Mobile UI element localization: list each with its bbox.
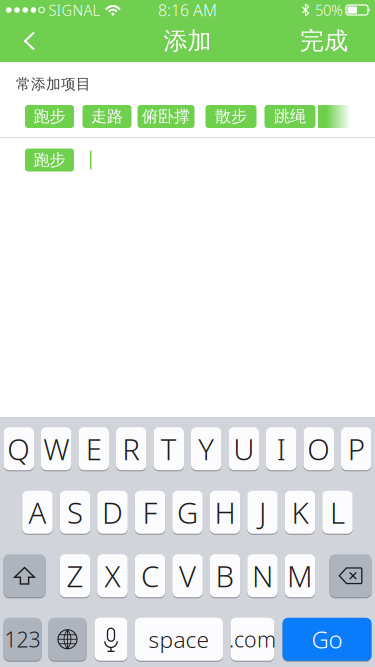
button[interactable]: 跑步 [25,148,74,171]
button[interactable]: 跑步 [25,105,74,128]
staticText: 俯卧撑 [142,107,190,126]
button[interactable]: D [97,490,128,534]
button[interactable]: Go [282,617,371,661]
staticText: R [122,429,140,468]
button[interactable]: L [322,490,353,534]
button[interactable]: K [285,490,315,534]
staticText: X [104,556,120,595]
staticText: T [161,429,177,468]
button[interactable]: B [210,554,240,598]
staticText: space [148,624,209,654]
staticText: D [102,493,123,532]
button[interactable]: space [135,617,223,661]
staticText: 跑步 [33,107,65,126]
button[interactable]: Z [60,554,90,598]
staticText: P [348,429,365,468]
button[interactable]: G [172,490,203,534]
staticText: .com [229,625,276,653]
staticText: 走路 [91,107,123,126]
button[interactable]: 跳绳 [264,105,315,128]
button[interactable]: 俯卧撑 [137,105,194,128]
staticText: M [287,556,313,595]
button[interactable]: X [97,554,128,598]
button[interactable]: U [228,427,259,471]
staticText: 跳绳 [274,107,306,126]
button[interactable]: E [78,427,109,471]
button[interactable]: O [303,427,334,471]
button[interactable]: Q [3,427,34,471]
staticText: S [67,493,83,532]
staticText: 8:16 AM [158,0,217,21]
button[interactable]: 123 [3,617,41,661]
staticText: J [259,493,266,532]
button[interactable]: 走路 [82,105,131,128]
staticText: C [141,556,159,595]
staticText: SIGNAL [48,0,100,20]
staticText: 常添加项目 [16,75,91,93]
staticText: Go [311,623,342,655]
staticText: N [252,556,273,595]
staticText: O [307,429,330,468]
button[interactable] [3,554,45,598]
staticText: 123 [4,625,40,653]
button[interactable] [0,31,43,50]
staticText: 添加 [163,26,211,56]
staticText: U [233,429,254,468]
staticText: W [43,429,69,468]
staticText: V [179,556,196,595]
button[interactable]: Y [191,427,221,471]
staticText: 跑步 [33,150,65,170]
button[interactable] [48,617,86,661]
button[interactable]: W [41,427,71,471]
button[interactable]: J [247,490,278,534]
button[interactable]: F [135,490,165,534]
staticText: B [215,556,234,595]
button[interactable] [94,617,127,661]
button[interactable]: M [285,554,315,598]
button[interactable]: R [116,427,146,471]
staticText: Z [66,556,83,595]
button[interactable]: S [60,490,90,534]
staticText: H [214,493,235,532]
button[interactable]: .com [230,617,274,661]
staticText: K [291,493,308,532]
button[interactable] [329,554,371,598]
button[interactable]: 完成 [300,26,375,56]
button[interactable]: A [22,490,53,534]
staticText: E [86,429,102,468]
staticText: A [28,493,46,532]
button[interactable]: H [210,490,240,534]
button[interactable]: 散步 [205,105,256,128]
staticText: F [142,493,157,532]
button[interactable]: I [266,427,296,471]
button[interactable]: T [153,427,184,471]
staticText: Y [198,429,214,468]
staticText: 散步 [215,107,247,126]
button[interactable]: C [135,554,165,598]
button[interactable]: N [247,554,278,598]
staticText: L [330,493,345,532]
staticText: Q [7,429,30,468]
staticText: 50% [315,0,343,20]
staticText: G [177,493,198,532]
button[interactable]: P [341,427,371,471]
staticText: 完成 [300,26,348,56]
button[interactable]: V [172,554,203,598]
staticText: I [277,429,286,468]
